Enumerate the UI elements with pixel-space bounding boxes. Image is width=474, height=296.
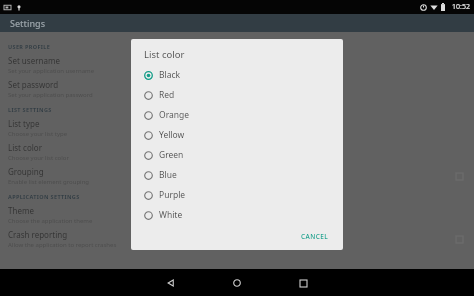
button[interactable]: Blue xyxy=(144,165,334,185)
staticText: Red xyxy=(159,89,175,101)
staticText: List type xyxy=(8,118,40,129)
staticText: Grouping xyxy=(8,166,44,177)
staticText: White xyxy=(159,209,183,221)
button[interactable]: CANCEL xyxy=(296,228,334,245)
button[interactable]: List color xyxy=(8,140,468,164)
staticText: Theme xyxy=(8,205,34,216)
button[interactable]: Orange xyxy=(144,105,334,125)
button[interactable]: Crash reporting xyxy=(8,227,468,251)
button[interactable]: White xyxy=(144,205,334,225)
staticText: Purple xyxy=(159,189,186,201)
staticText: Set your application username xyxy=(8,67,95,75)
staticText: APPLICATION SETTINGS xyxy=(8,193,80,200)
button[interactable]: Grouping xyxy=(8,164,468,188)
staticText: Choose your list type xyxy=(8,130,68,138)
staticText: Allow the application to report crashes xyxy=(8,241,117,249)
staticText: CANCEL xyxy=(301,232,329,241)
button[interactable]: Set username xyxy=(8,53,468,77)
button[interactable]: List type xyxy=(8,116,468,140)
staticText: 10:52 xyxy=(452,2,470,12)
button[interactable]: Set password xyxy=(8,77,468,101)
button[interactable]: Home xyxy=(224,270,250,296)
staticText: Settings xyxy=(10,17,46,29)
button[interactable]: Back xyxy=(158,270,184,296)
staticText: USER PROFILE xyxy=(8,43,51,50)
staticText: Set your application password xyxy=(8,91,93,99)
staticText: List color xyxy=(144,48,185,61)
button[interactable]: Red xyxy=(144,85,334,105)
staticText: Set password xyxy=(8,79,59,90)
staticText: Blue xyxy=(159,169,177,181)
staticText: Choose your list color xyxy=(8,154,69,162)
button[interactable]: Recent apps xyxy=(290,270,316,296)
staticText: Orange xyxy=(159,109,190,121)
button[interactable]: Green xyxy=(144,145,334,165)
staticText: Crash reporting xyxy=(8,229,68,240)
button[interactable]: Theme xyxy=(8,203,468,227)
button[interactable]: Black xyxy=(144,65,334,85)
staticText: Enable list element grouping xyxy=(8,178,90,186)
button[interactable]: Yellow xyxy=(144,125,334,145)
staticText: List color xyxy=(8,142,42,153)
button[interactable]: Purple xyxy=(144,185,334,205)
staticText: Set username xyxy=(8,55,60,66)
staticText: Green xyxy=(159,149,184,161)
staticText: LIST SETTINGS xyxy=(8,106,52,113)
staticText: Black xyxy=(159,69,181,81)
staticText: Yellow xyxy=(159,129,185,141)
staticText: Choose the application theme xyxy=(8,217,93,225)
